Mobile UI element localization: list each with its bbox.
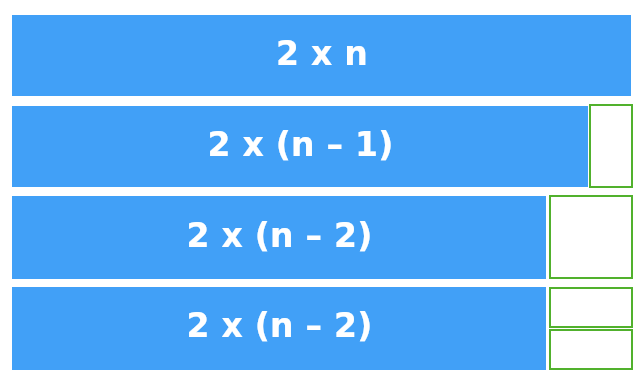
button[interactable]: remainder lower half — [549, 329, 633, 370]
staticText: 2 x (n – 2) — [186, 306, 373, 344]
button[interactable]: 2 x (n – 2) — [12, 196, 546, 279]
button[interactable]: remainder upper half — [549, 287, 633, 328]
staticText: 2 x (n – 2) — [186, 216, 373, 254]
button[interactable]: 2 x (n – 1) — [12, 106, 588, 187]
button[interactable]: 2 x n — [12, 15, 631, 96]
staticText: 2 x (n – 1) — [207, 125, 394, 163]
staticText: 2 x n — [276, 34, 368, 72]
button[interactable]: two elements removed — [549, 195, 633, 279]
button[interactable]: one element removed — [589, 104, 633, 188]
button[interactable]: 2 x (n – 2) — [12, 287, 546, 370]
